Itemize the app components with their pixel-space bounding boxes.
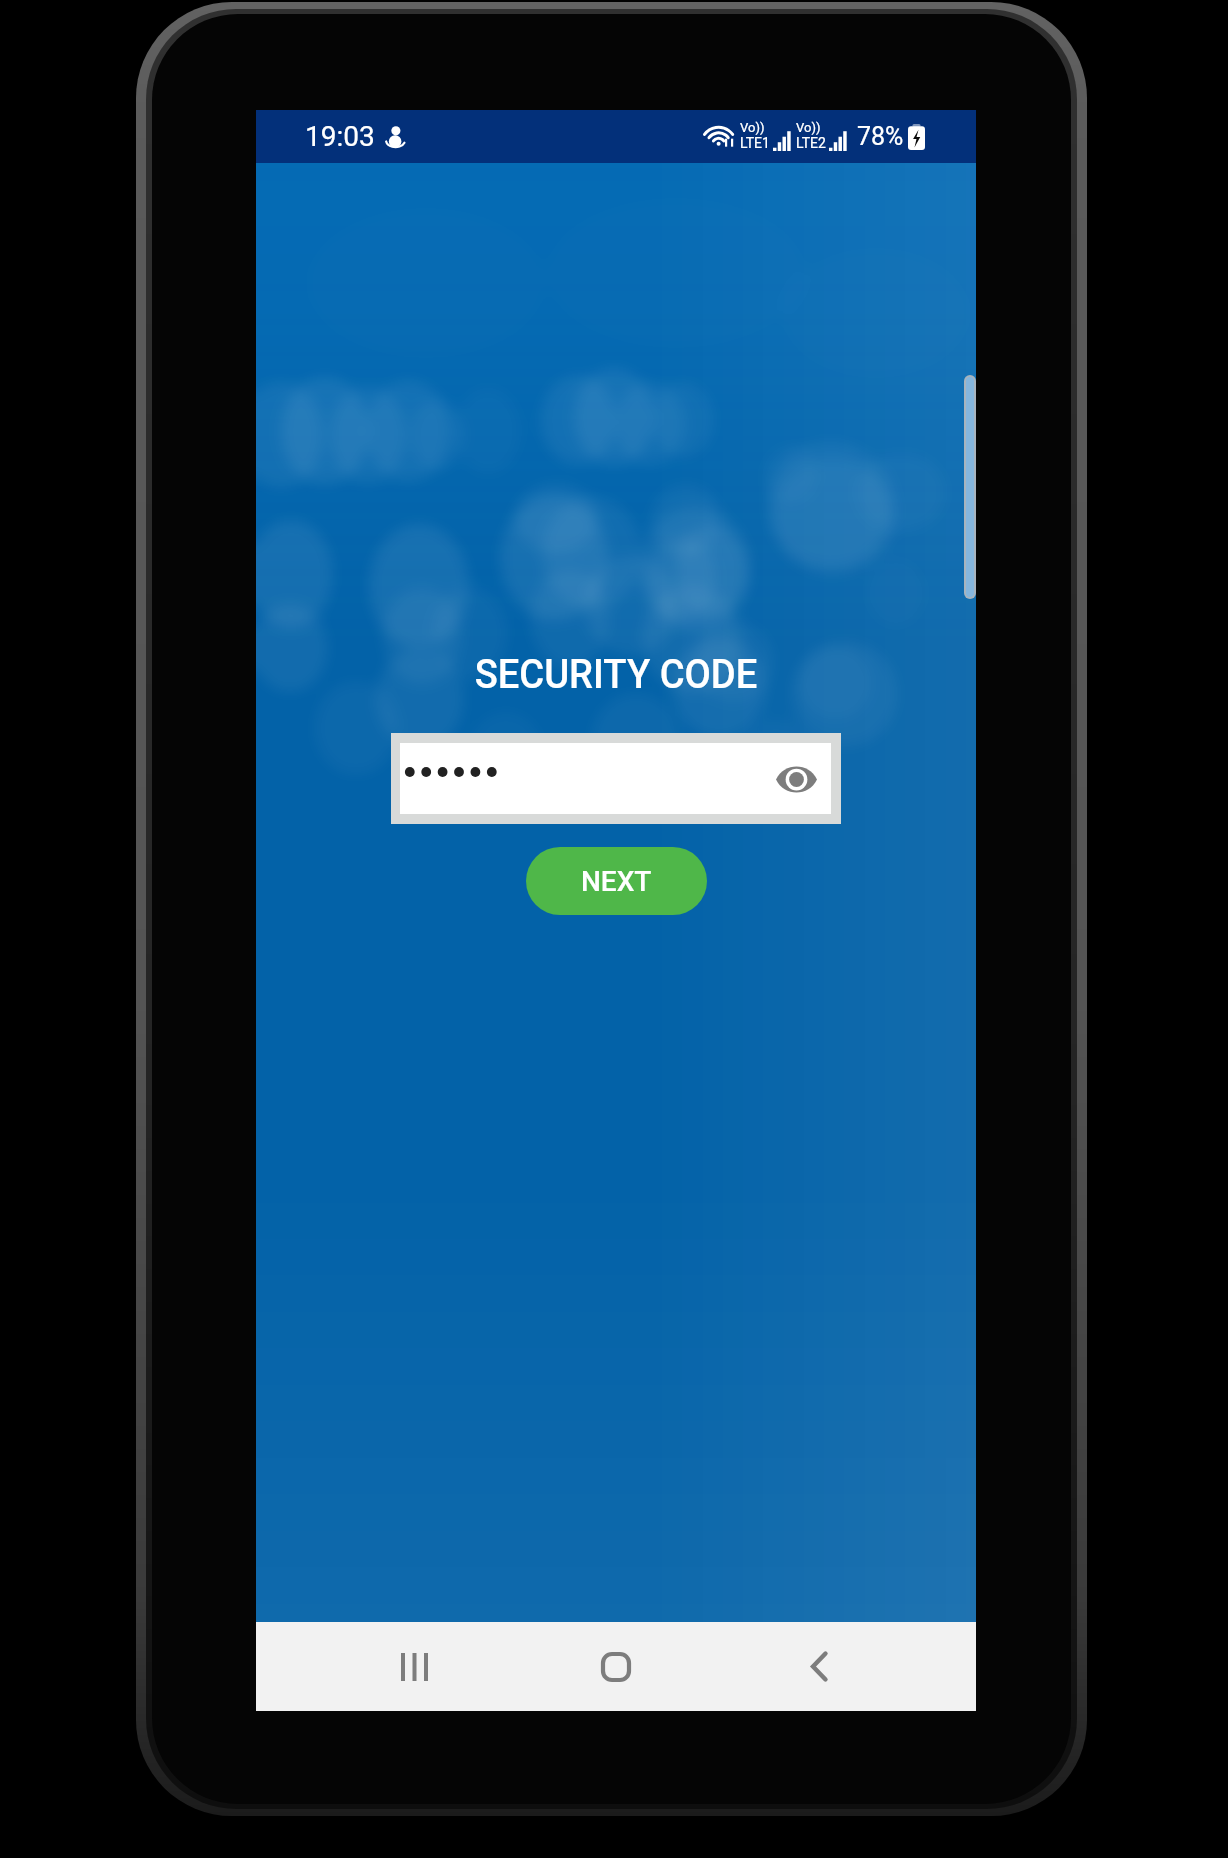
button[interactable]: Show password xyxy=(772,755,820,803)
button[interactable]: Home xyxy=(557,1628,674,1705)
button[interactable]: Back xyxy=(760,1628,877,1705)
staticText: Vo)) xyxy=(796,120,821,135)
staticText: LTE2 xyxy=(796,135,826,151)
button[interactable]: Show password xyxy=(391,733,841,824)
staticText: NEXT xyxy=(581,865,652,898)
staticText: SECURITY CODE xyxy=(475,650,757,698)
button[interactable]: Recents xyxy=(356,1628,473,1705)
button[interactable]: NEXT xyxy=(526,847,707,915)
staticText: 19:03 xyxy=(305,120,375,153)
staticText: Vo)) xyxy=(740,120,765,135)
staticText: LTE1 xyxy=(740,135,770,151)
staticText: 78% xyxy=(857,122,904,151)
